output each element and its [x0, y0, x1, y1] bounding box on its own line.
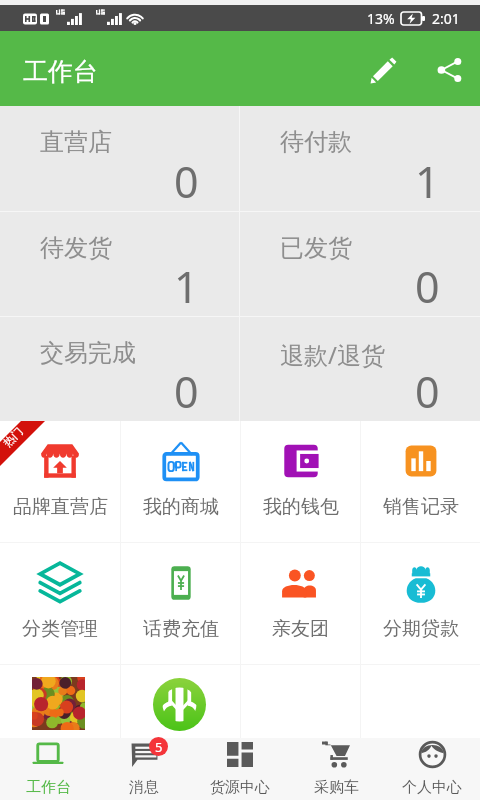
staticText: 1 — [415, 152, 440, 211]
button[interactable]: Edit — [360, 38, 418, 100]
staticText: 分期贷款 — [383, 617, 459, 641]
button[interactable]: 分期贷款 — [361, 543, 480, 664]
staticText: 话费充值 — [143, 617, 219, 641]
button[interactable]: Fresh fruit — [0, 665, 120, 738]
staticText: 我的商城 — [143, 495, 219, 519]
button[interactable]: 亲友团 — [241, 543, 360, 664]
staticText: 5 — [155, 738, 163, 756]
button[interactable]: 我的钱包 — [241, 421, 360, 542]
button[interactable]: 话费充值 — [121, 543, 240, 664]
staticText: 采购车 — [314, 778, 359, 797]
staticText: 工作台 — [23, 56, 98, 87]
button[interactable]: 待付款 — [240, 106, 480, 211]
button[interactable]: Share — [418, 38, 480, 100]
button[interactable]: 我的商城 — [121, 421, 240, 542]
staticText: 退款/退货 — [280, 338, 385, 371]
staticText: 亲友团 — [272, 617, 329, 641]
button[interactable]: 工作台 — [0, 738, 96, 800]
staticText: 消息 — [129, 778, 159, 797]
button[interactable]: 销售记录 — [361, 421, 480, 542]
staticText: 2:01 — [432, 9, 460, 28]
staticText: 1 — [174, 257, 199, 316]
staticText: 销售记录 — [383, 495, 459, 519]
staticText: 交易完成 — [40, 338, 136, 368]
button[interactable]: 交易完成 — [0, 317, 239, 421]
button[interactable]: 品牌直营店 — [0, 421, 120, 542]
staticText: 待付款 — [280, 127, 352, 157]
staticText: 0 — [415, 362, 440, 421]
button[interactable]: 采购车 — [288, 738, 384, 800]
staticText: 0 — [415, 257, 440, 316]
button[interactable]: 待发货 — [0, 212, 239, 316]
button[interactable]: 退款/退货 — [240, 317, 480, 421]
staticText: 货源中心 — [210, 778, 270, 797]
staticText: 工作台 — [26, 778, 71, 797]
staticText: 13% — [367, 9, 395, 28]
button[interactable]: 分类管理 — [0, 543, 120, 664]
button[interactable]: 货源中心 — [192, 738, 288, 800]
button[interactable]: 5 — [96, 738, 192, 800]
staticText: 直营店 — [40, 127, 112, 157]
button[interactable]: 已发货 — [240, 212, 480, 316]
staticText: 待发货 — [40, 233, 112, 263]
button[interactable]: Farm — [121, 665, 240, 738]
staticText: 0 — [174, 362, 199, 421]
button[interactable]: 直营店 — [0, 106, 239, 211]
staticText: 热门 — [0, 424, 26, 450]
staticText: 分类管理 — [22, 617, 98, 641]
staticText: 我的钱包 — [263, 495, 339, 519]
staticText: 个人中心 — [402, 778, 462, 797]
staticText: 已发货 — [280, 233, 352, 263]
staticText: 品牌直营店 — [13, 495, 108, 519]
button[interactable]: 个人中心 — [384, 738, 480, 800]
staticText: 0 — [174, 152, 199, 211]
